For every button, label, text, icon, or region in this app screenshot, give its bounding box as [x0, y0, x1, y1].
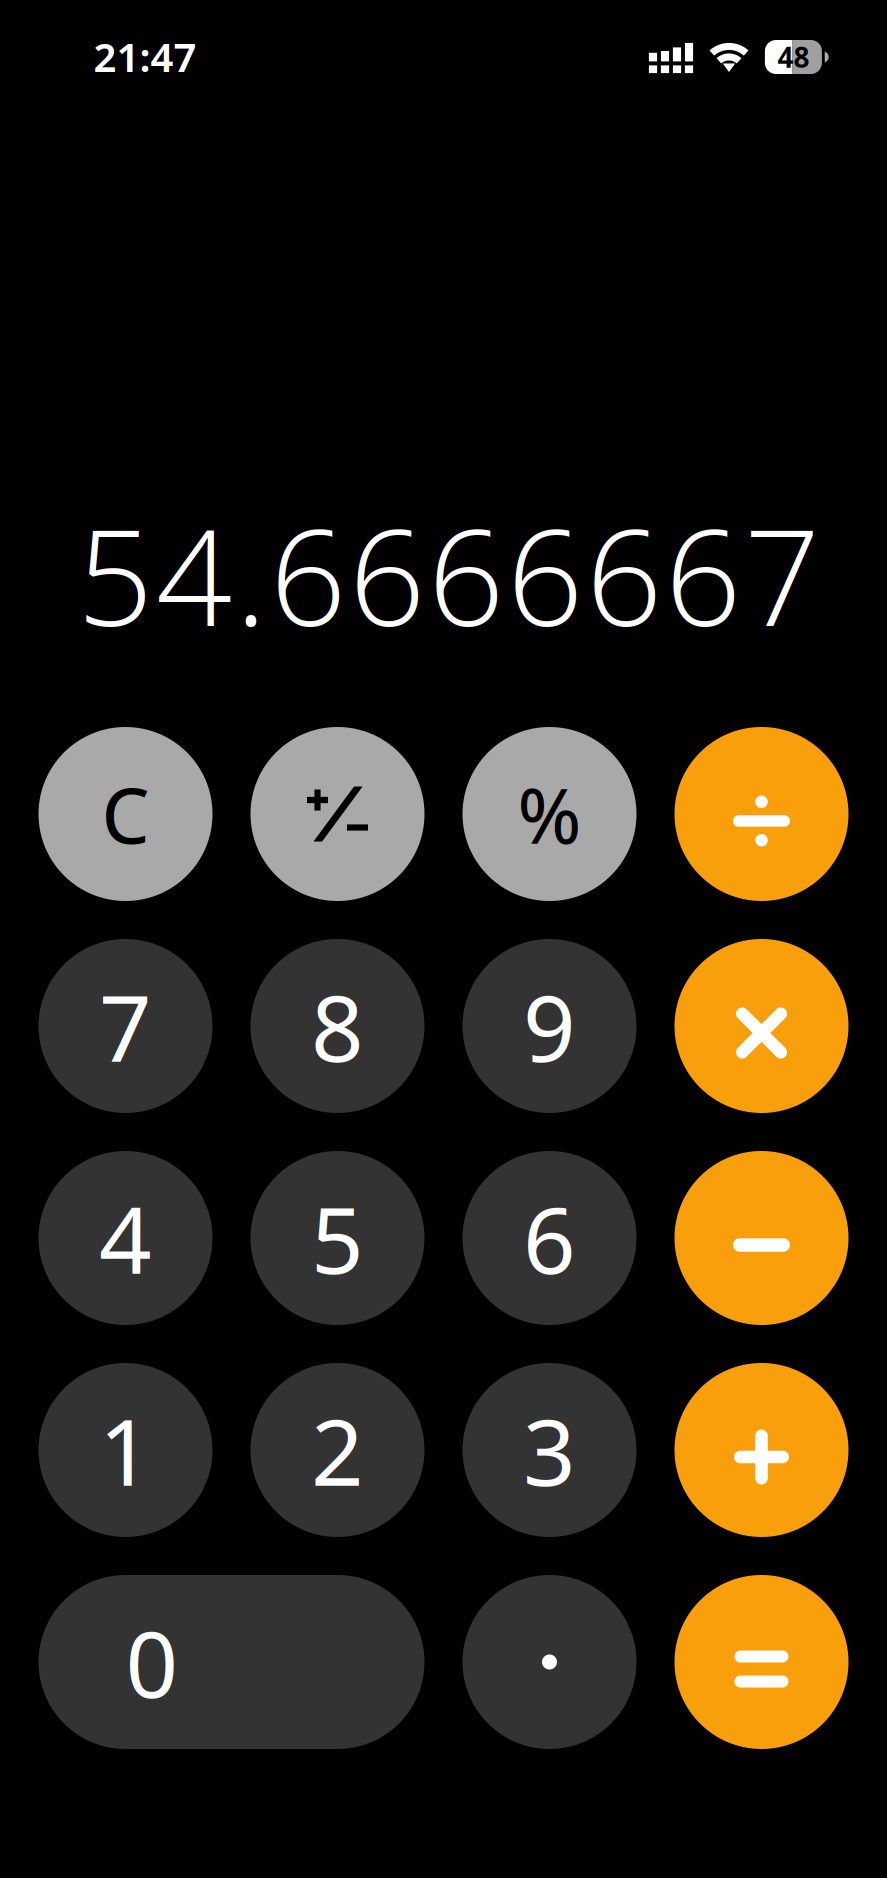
staticText: 6	[523, 1175, 576, 1301]
button[interactable]: 6	[462, 1151, 636, 1325]
staticText: 54.6666667	[77, 483, 820, 665]
staticText: 7	[99, 963, 152, 1089]
button[interactable]: 3	[462, 1363, 636, 1537]
staticText: %	[517, 762, 581, 866]
staticText: 8	[311, 963, 364, 1089]
staticText: 48	[777, 38, 809, 76]
button[interactable]: Multiply	[674, 939, 848, 1113]
staticText: 9	[523, 963, 576, 1089]
button[interactable]: 9	[462, 939, 636, 1113]
button[interactable]: Plus	[674, 1363, 848, 1537]
button[interactable]: Clear	[38, 727, 212, 901]
button[interactable]: 8	[250, 939, 424, 1113]
button[interactable]: Decimal point	[462, 1575, 636, 1749]
button[interactable]: Minus	[674, 1151, 848, 1325]
button[interactable]: 7	[38, 939, 212, 1113]
button[interactable]: Percent	[462, 727, 636, 901]
button[interactable]: Equals	[674, 1575, 848, 1749]
button[interactable]: 5	[250, 1151, 424, 1325]
staticText: 0	[125, 1599, 178, 1725]
staticText: 2	[311, 1387, 364, 1513]
staticText: 5	[311, 1175, 364, 1301]
staticText: 1	[99, 1387, 152, 1513]
staticText: C	[101, 762, 149, 866]
button[interactable]: 0	[38, 1575, 424, 1749]
staticText: 21:47	[93, 29, 196, 84]
button[interactable]: Divide	[674, 727, 848, 901]
staticText: 4	[99, 1175, 152, 1301]
button[interactable]: Toggle sign	[250, 727, 424, 901]
button[interactable]: 4	[38, 1151, 212, 1325]
button[interactable]: 1	[38, 1363, 212, 1537]
staticText: 3	[523, 1387, 576, 1513]
button[interactable]: 2	[250, 1363, 424, 1537]
